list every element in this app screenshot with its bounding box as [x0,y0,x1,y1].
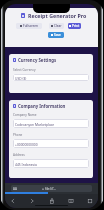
staticText: USD ($) [15,76,27,80]
button[interactable]: AA [11,185,92,192]
button[interactable]: Clear [49,23,64,29]
button[interactable]: 445 Indonesia [13,159,89,168]
staticText: Fullscreen [23,24,39,28]
button[interactable]: Back [8,196,18,206]
staticText: Codecanyon Marketplace [15,122,55,126]
staticText: Company Name [13,113,37,117]
staticText: Print [72,24,80,28]
button[interactable]: Bookmarks [66,196,76,206]
staticText: +00000000000 [15,142,38,146]
button[interactable]: Forward [27,196,37,206]
staticText: Receipt Generator Pro [28,12,87,19]
button[interactable]: Print [68,23,81,29]
button[interactable]: Fullscreen [16,23,42,29]
staticText: Save [54,33,61,37]
staticText: file:///... [45,187,56,191]
button[interactable]: Share [47,196,57,206]
staticText: Address [13,153,25,157]
staticText: Clear [54,24,62,28]
button[interactable]: USD ($) [13,74,89,81]
staticText: 445 Indonesia [15,162,37,166]
staticText: Currency Settings [18,57,57,63]
staticText: Select Currency [13,68,36,72]
staticText: Phone [13,133,23,137]
button[interactable]: Save [48,32,64,38]
button[interactable]: Codecanyon Marketplace [13,119,89,128]
staticText: AA [13,187,17,191]
button[interactable]: +00000000000 [13,139,89,148]
staticText: Company Information [18,103,66,109]
button[interactable]: Tabs [85,196,95,206]
